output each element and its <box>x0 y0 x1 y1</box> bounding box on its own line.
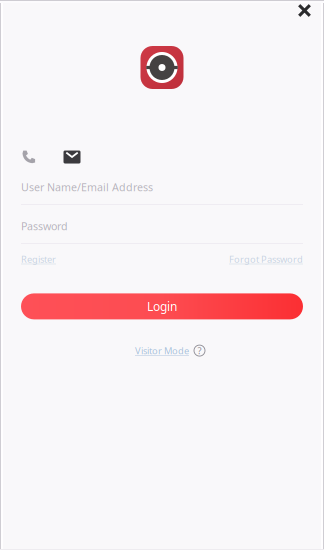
button[interactable]: Phone login <box>18 147 40 167</box>
staticText: ? <box>197 344 201 357</box>
button[interactable]: Close <box>292 0 317 23</box>
button[interactable]: Forgot Password <box>229 253 303 265</box>
button[interactable]: Email login <box>61 147 83 167</box>
staticText: Forgot Password <box>229 253 303 265</box>
button[interactable]: Login <box>21 293 303 319</box>
staticText: Register <box>21 253 56 265</box>
staticText: Login <box>147 298 177 314</box>
button[interactable]: Visitor Mode <box>119 344 205 357</box>
staticText: User Name/Email Address <box>21 180 153 194</box>
button[interactable]: Register <box>21 253 56 265</box>
staticText: Visitor Mode <box>135 344 189 357</box>
staticText: Password <box>21 219 68 233</box>
